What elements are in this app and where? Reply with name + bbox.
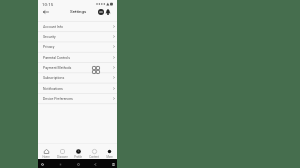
- button[interactable]: Subscriptions: [38, 73, 117, 82]
- button[interactable]: Help: [96, 7, 105, 16]
- button[interactable]: Screenshot: [57, 161, 63, 167]
- button[interactable]: Discover: [54, 144, 70, 160]
- staticText: 10:15: [42, 2, 54, 7]
- button[interactable]: Notifications: [38, 84, 117, 93]
- button[interactable]: Device Preferences: [38, 94, 117, 103]
- button[interactable]: Payment Methods: [38, 63, 117, 72]
- staticText: Account Info: [43, 25, 63, 29]
- staticText: Payment Methods: [43, 66, 72, 70]
- button[interactable]: Assistant: [39, 161, 45, 167]
- button[interactable]: Content: [86, 144, 102, 160]
- staticText: Subscriptions: [43, 76, 65, 80]
- staticText: Notifications: [43, 87, 63, 91]
- staticText: More: [106, 155, 113, 158]
- staticText: Security: [43, 35, 56, 39]
- button[interactable]: Profile: [70, 144, 86, 160]
- staticText: Home: [42, 155, 50, 158]
- staticText: Discover: [57, 155, 68, 158]
- staticText: Content: [89, 155, 99, 158]
- staticText: Parental Controls: [43, 56, 70, 60]
- button[interactable]: Back: [92, 161, 98, 167]
- button[interactable]: Account Info: [38, 22, 117, 31]
- staticText: Profile: [74, 155, 82, 158]
- button[interactable]: Home: [75, 161, 81, 167]
- staticText: Device Preferences: [43, 97, 73, 101]
- button[interactable]: Apps: [110, 161, 116, 167]
- button[interactable]: Back: [41, 7, 50, 16]
- button[interactable]: Notifications: [103, 7, 112, 16]
- button[interactable]: Privacy: [38, 42, 117, 51]
- staticText: Settings: [70, 9, 87, 14]
- staticText: Privacy: [43, 45, 55, 49]
- button[interactable]: Parental Controls: [38, 53, 117, 62]
- button[interactable]: More: [102, 144, 117, 160]
- button[interactable]: Security: [38, 32, 117, 41]
- button[interactable]: Home: [38, 144, 54, 160]
